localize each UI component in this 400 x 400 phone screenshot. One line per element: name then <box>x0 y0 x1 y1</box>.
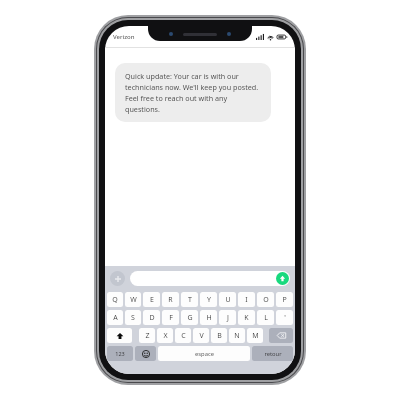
button[interactable]: Y <box>200 292 217 307</box>
button[interactable]: D <box>143 310 160 325</box>
staticText: M <box>252 331 259 341</box>
button[interactable]: V <box>193 328 209 343</box>
staticText: E <box>150 295 154 305</box>
button[interactable]: Send <box>276 272 289 285</box>
staticText: A <box>113 313 118 323</box>
staticText: Q <box>112 295 118 305</box>
button[interactable]: O <box>257 292 274 307</box>
button[interactable]: K <box>238 310 255 325</box>
button[interactable]: X <box>157 328 173 343</box>
button[interactable]: Quick update: Your car is with our techn… <box>115 63 271 122</box>
staticText: 123 <box>115 350 125 357</box>
button[interactable]: Q <box>107 292 123 307</box>
button[interactable]: W <box>125 292 141 307</box>
button[interactable]: R <box>162 292 179 307</box>
button[interactable]: Send <box>130 271 290 286</box>
staticText: N <box>234 331 240 341</box>
button[interactable]: 123 <box>107 346 133 361</box>
staticText: S <box>131 313 135 323</box>
button[interactable]: retour <box>252 346 293 361</box>
button[interactable]: S <box>125 310 141 325</box>
staticText: X <box>163 331 168 341</box>
staticText: O <box>263 295 269 305</box>
button[interactable]: A <box>107 310 123 325</box>
staticText: R <box>168 295 173 305</box>
button[interactable]: E <box>143 292 160 307</box>
staticText: D <box>149 313 155 323</box>
button[interactable]: J <box>219 310 236 325</box>
button[interactable]: P <box>276 292 293 307</box>
button[interactable]: I <box>238 292 255 307</box>
staticText: Verizon <box>113 33 135 41</box>
button[interactable]: Z <box>139 328 155 343</box>
button[interactable]: F <box>162 310 179 325</box>
staticText: Y <box>207 295 211 305</box>
button[interactable]: espace <box>158 346 250 361</box>
button[interactable]: C <box>175 328 191 343</box>
button[interactable]: G <box>181 310 198 325</box>
staticText: Z <box>145 331 150 341</box>
button[interactable]: H <box>200 310 217 325</box>
staticText: Quick update: Your car is with our techn… <box>125 71 261 114</box>
staticText: U <box>225 295 231 305</box>
button[interactable]: N <box>229 328 245 343</box>
staticText: T <box>188 295 192 305</box>
button[interactable]: M <box>247 328 263 343</box>
staticText: I <box>245 295 248 305</box>
staticText: P <box>282 295 287 305</box>
staticText: retour <box>264 350 282 358</box>
button[interactable]: T <box>181 292 198 307</box>
button[interactable]: Add attachment <box>110 271 125 286</box>
button[interactable]: Backspace <box>269 328 293 343</box>
staticText: ' <box>284 313 286 323</box>
button[interactable]: L <box>257 310 274 325</box>
staticText: J <box>227 313 229 323</box>
button[interactable]: B <box>211 328 227 343</box>
button[interactable]: Shift <box>107 328 132 343</box>
staticText: L <box>264 313 268 323</box>
staticText: F <box>169 313 173 323</box>
staticText: K <box>244 313 249 323</box>
staticText: H <box>206 313 212 323</box>
staticText: espace <box>195 350 214 358</box>
button[interactable]: Emoji <box>135 346 156 361</box>
staticText: V <box>199 331 204 341</box>
staticText: C <box>181 331 186 341</box>
staticText: G <box>187 313 193 323</box>
staticText: B <box>217 331 222 341</box>
button[interactable]: U <box>219 292 236 307</box>
button[interactable]: ' <box>276 310 293 325</box>
staticText: W <box>130 295 137 305</box>
